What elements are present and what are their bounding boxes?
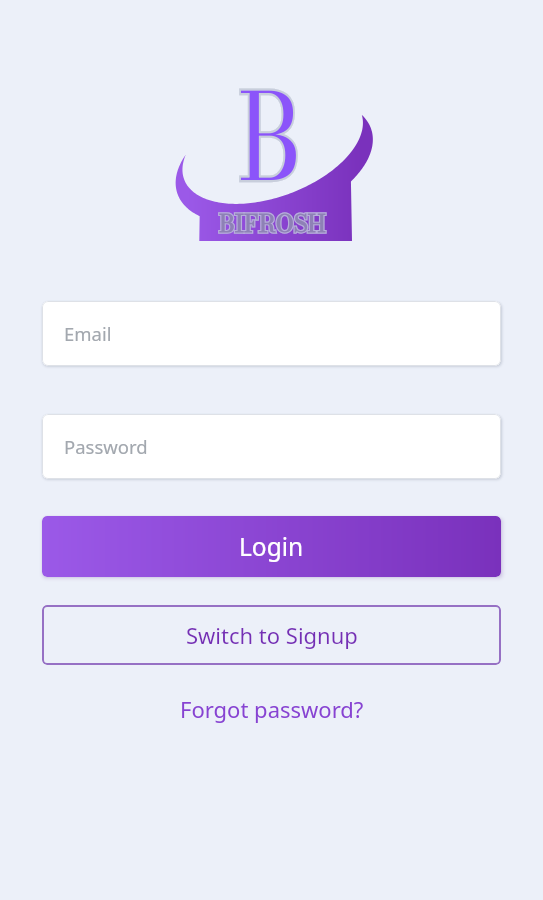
- staticText: BIFROSH: [219, 205, 326, 242]
- staticText: Forgot password?: [180, 694, 364, 724]
- staticText: Email: [64, 321, 112, 346]
- staticText: BIFROSH: [219, 205, 326, 242]
- button[interactable]: Forgot password?: [180, 694, 364, 724]
- button[interactable]: Email: [42, 301, 501, 366]
- button[interactable]: Password: [42, 414, 501, 479]
- button[interactable]: Login: [42, 516, 501, 577]
- button[interactable]: Switch to Signup: [42, 605, 501, 665]
- staticText: B: [238, 47, 302, 202]
- staticText: Password: [64, 434, 148, 459]
- staticText: Login: [239, 530, 304, 563]
- staticText: Switch to Signup: [186, 620, 358, 650]
- staticText: B: [238, 47, 302, 202]
